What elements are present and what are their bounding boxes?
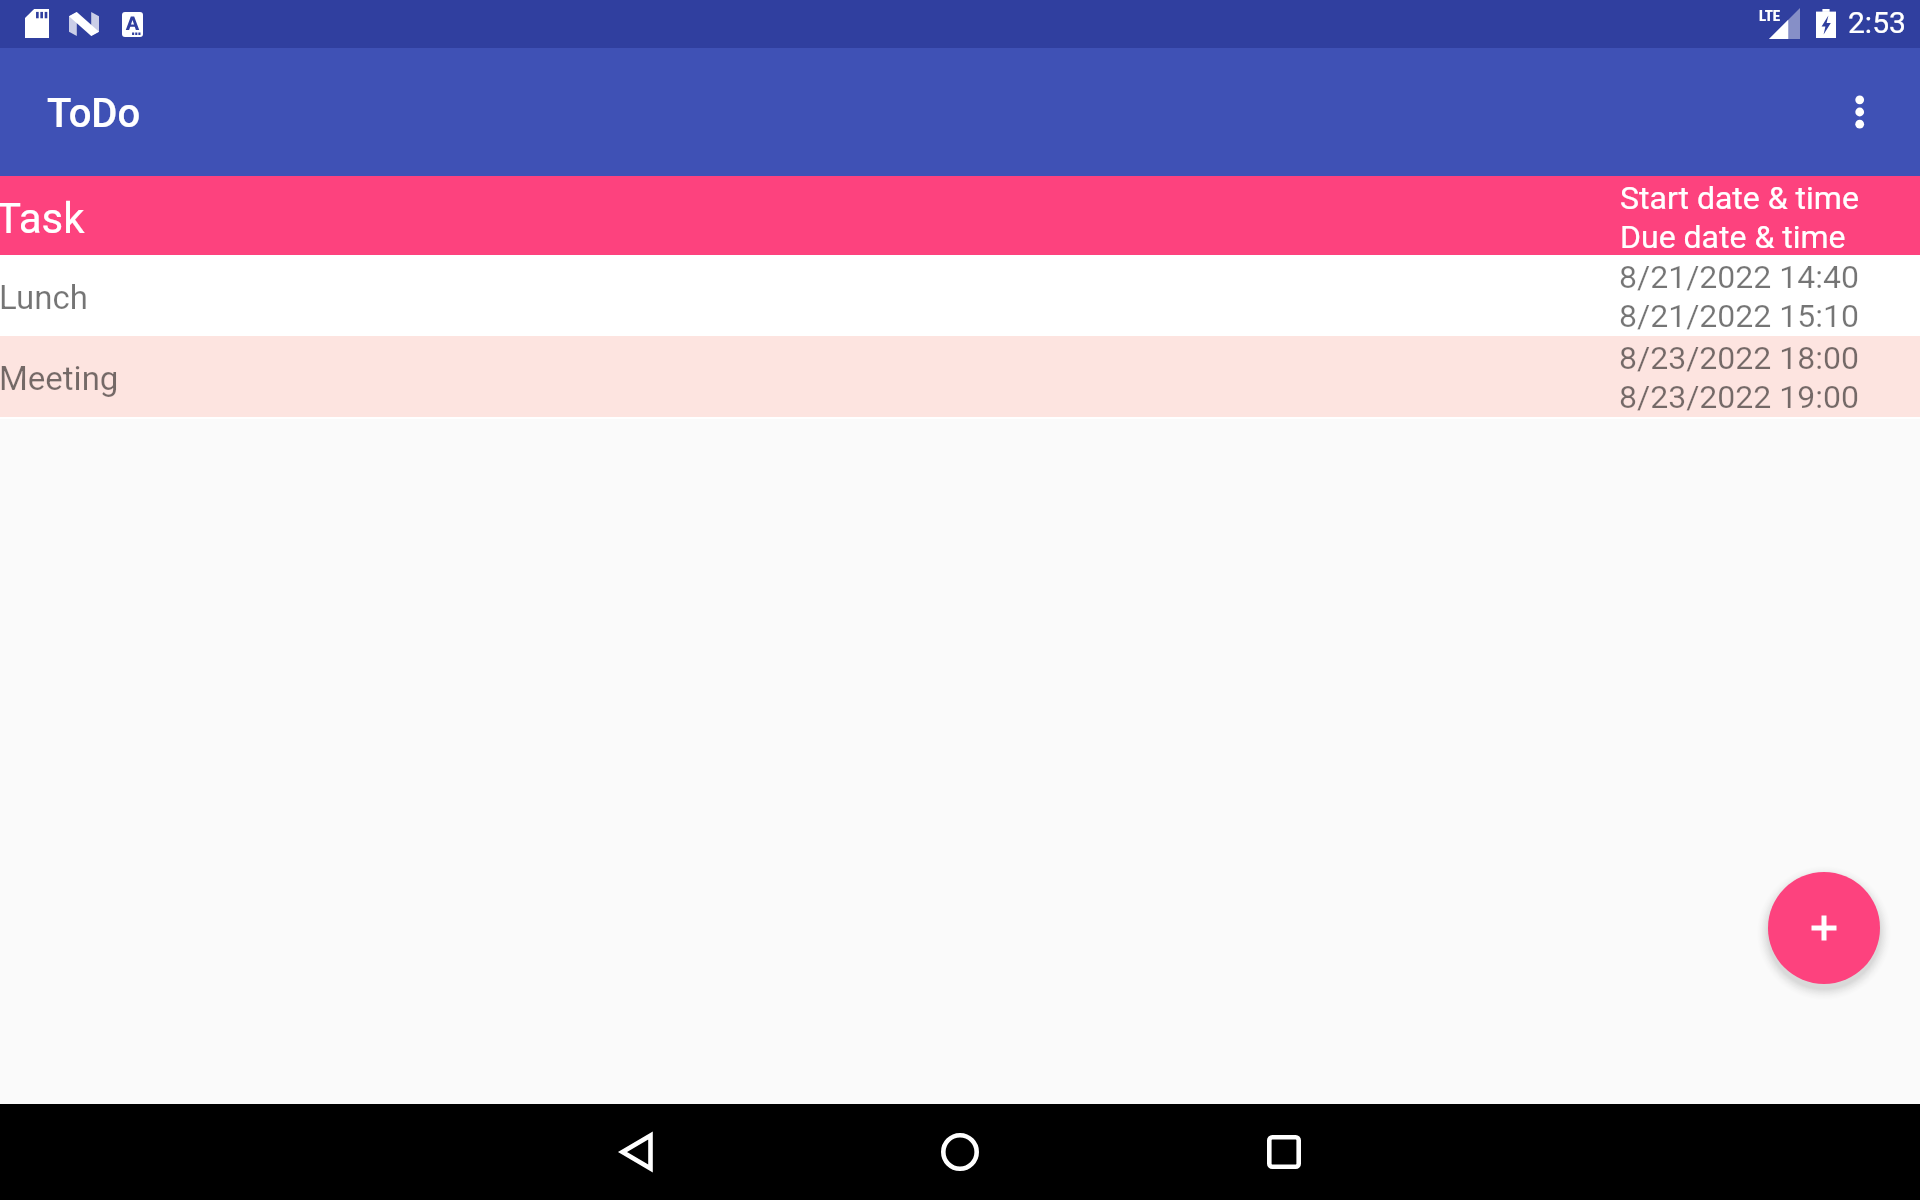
staticText: 8/23/2022 18:00 xyxy=(1619,338,1859,377)
button[interactable]: Meeting xyxy=(0,336,1920,417)
button[interactable]: Add task xyxy=(1768,872,1880,984)
staticText: 2:53 xyxy=(1848,8,1906,40)
staticText: LTE xyxy=(1759,7,1781,25)
staticText: Task xyxy=(0,197,85,243)
button[interactable]: Home xyxy=(912,1104,1008,1200)
button[interactable]: More options xyxy=(1824,64,1896,136)
staticText: 8/23/2022 19:00 xyxy=(1619,377,1859,416)
button[interactable]: Back xyxy=(588,1104,684,1200)
staticText: 8/21/2022 15:10 xyxy=(1619,296,1859,335)
staticText: Start date & time xyxy=(1620,178,1859,217)
staticText: 8/21/2022 14:40 xyxy=(1619,257,1859,296)
staticText: Lunch xyxy=(0,279,88,317)
staticText: Meeting xyxy=(0,360,119,398)
staticText: ToDo xyxy=(47,92,141,136)
button[interactable]: Lunch xyxy=(0,255,1920,336)
button[interactable]: Task xyxy=(0,176,1920,255)
button[interactable]: Recent apps xyxy=(1236,1104,1332,1200)
staticText: Due date & time xyxy=(1620,217,1846,256)
